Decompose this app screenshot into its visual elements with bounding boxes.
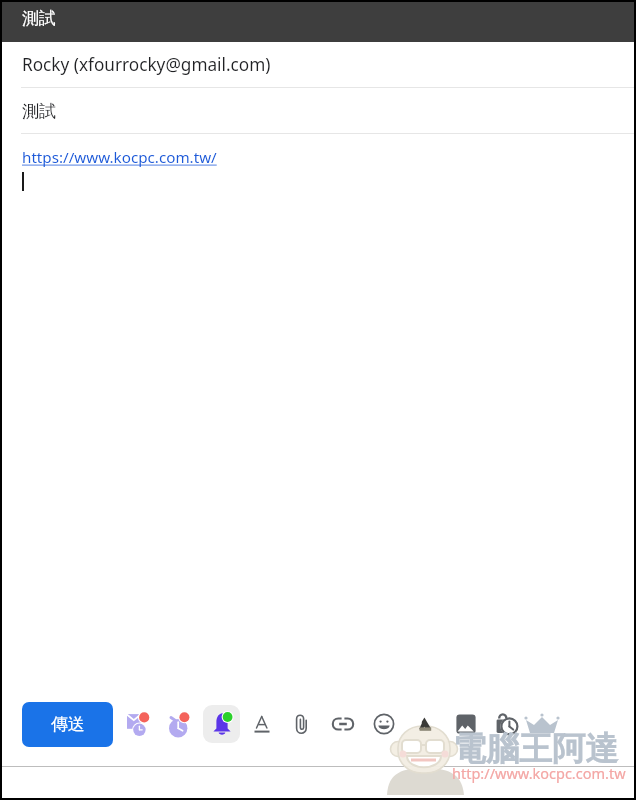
button[interactable]: Insert photo xyxy=(445,704,485,744)
button[interactable]: Insert from Drive xyxy=(405,704,445,744)
button[interactable]: 測試 xyxy=(2,88,634,133)
button[interactable]: Formatting xyxy=(242,704,282,744)
button[interactable]: Insert from Drive xyxy=(405,704,445,744)
button[interactable]: Rocky (xfourrocky@gmail.com) xyxy=(2,42,634,87)
button[interactable]: Schedule send xyxy=(119,704,159,744)
staticText: http://www.kocpc.com.tw xyxy=(452,763,626,783)
button[interactable]: Confidential mode xyxy=(486,704,526,744)
button[interactable]: Insert emoji xyxy=(364,704,404,744)
button[interactable]: 測試 xyxy=(2,2,634,42)
staticText: 測試 xyxy=(22,100,57,122)
button[interactable]: 傳送 xyxy=(22,702,113,747)
button[interactable]: Insert link xyxy=(323,704,363,744)
staticText: 測試 xyxy=(22,8,56,29)
staticText: Rocky (xfourrocky@gmail.com) xyxy=(22,53,271,76)
staticText: https://www.kocpc.com.tw/ xyxy=(22,147,217,168)
button[interactable]: Snooze xyxy=(160,704,200,744)
button[interactable]: Notifications xyxy=(201,704,241,744)
button[interactable]: https://www.kocpc.com.tw/ xyxy=(22,147,634,702)
staticText: 傳送 xyxy=(51,714,85,735)
staticText: 電腦王阿達 xyxy=(453,728,618,770)
button[interactable]: Attach file xyxy=(282,704,322,744)
